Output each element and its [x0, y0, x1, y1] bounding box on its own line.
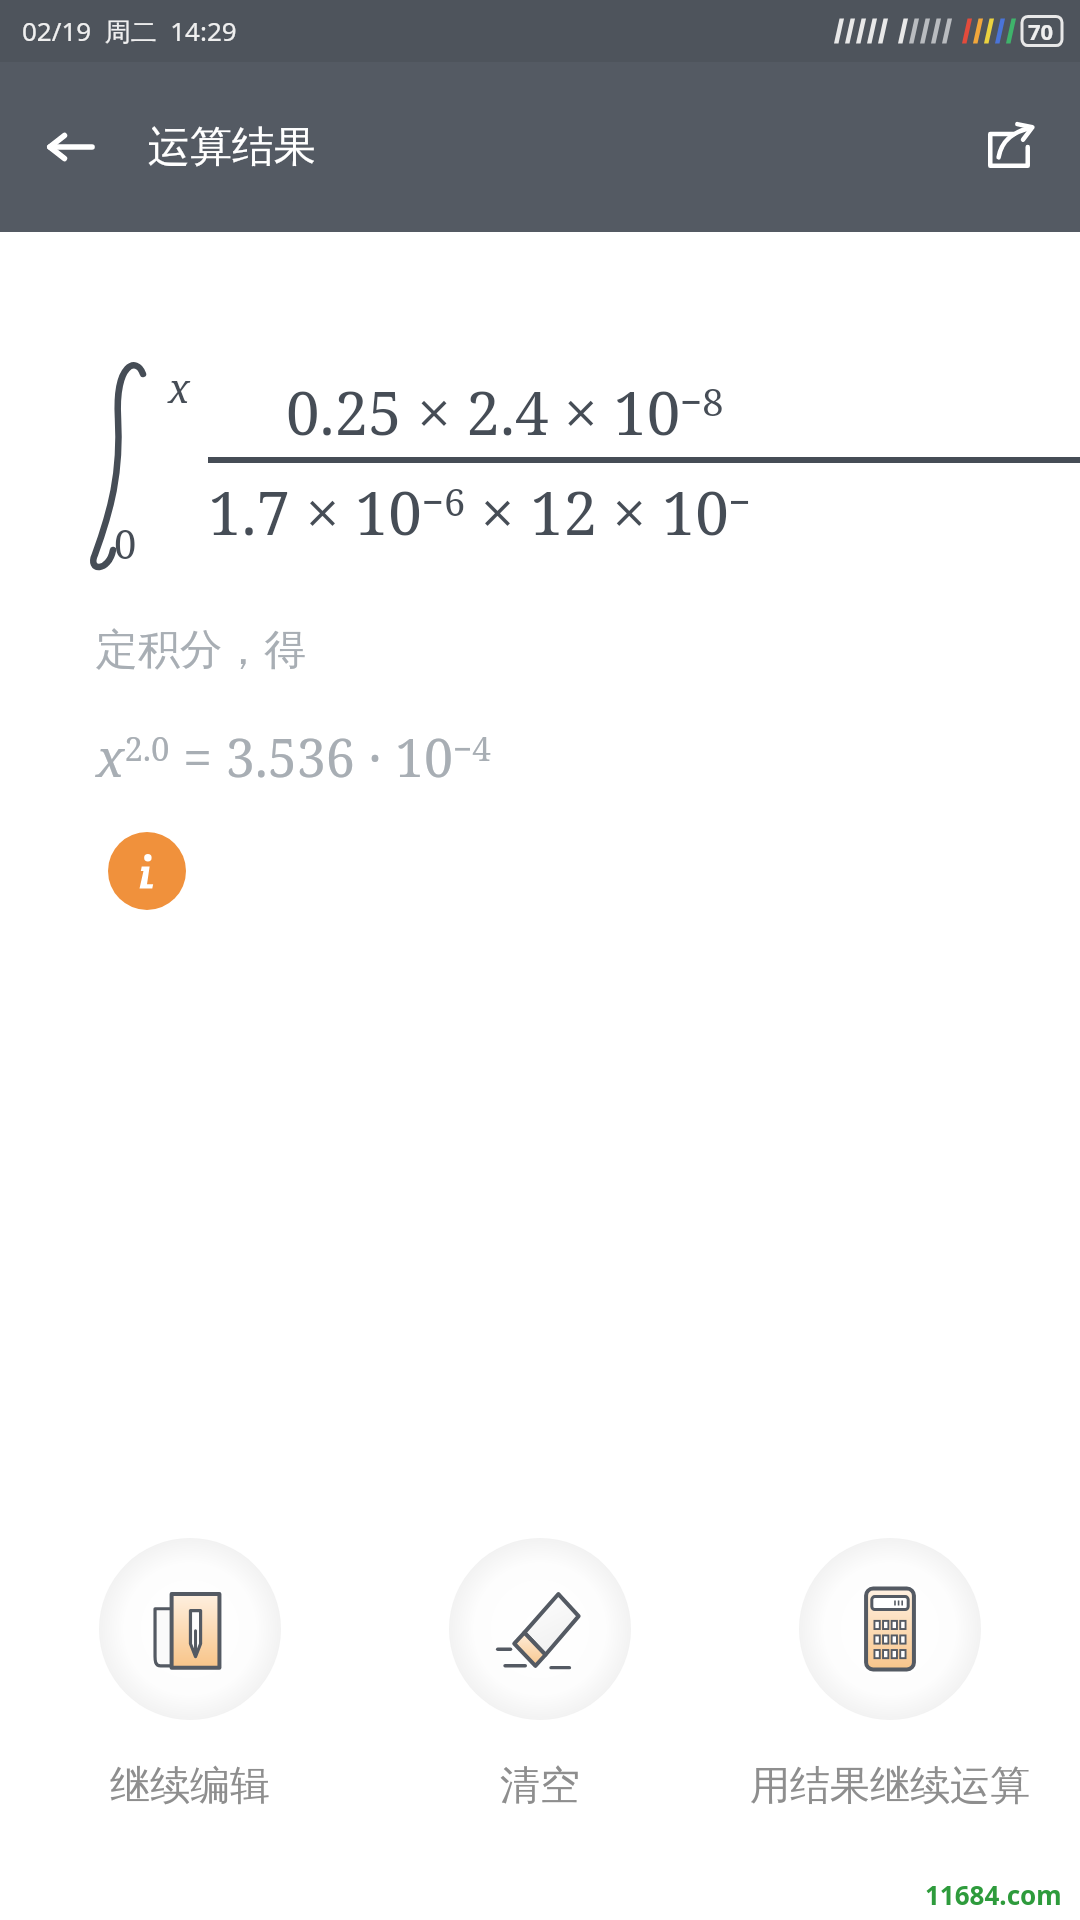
- button[interactable]: Share: [966, 104, 1052, 190]
- staticText: 0: [114, 516, 137, 570]
- button[interactable]: 清空: [396, 1538, 684, 1810]
- staticText: 定积分，得: [96, 624, 306, 677]
- button[interactable]: Info: [108, 832, 186, 910]
- staticText: 运算结果: [148, 121, 316, 174]
- staticText: 1.7 × 10−6 × 12 × 10−: [208, 471, 751, 553]
- staticText: 0.25 × 2.4 × 10−8: [286, 371, 724, 453]
- staticText: 02/19 周二 14:29: [22, 13, 237, 49]
- staticText: 继续编辑: [110, 1760, 270, 1810]
- staticText: 11684.com: [925, 1877, 1062, 1912]
- staticText: x: [168, 360, 190, 414]
- button[interactable]: 继续编辑: [46, 1538, 334, 1810]
- staticText: 用结果继续运算: [750, 1760, 1030, 1810]
- button[interactable]: Back: [28, 105, 112, 189]
- staticText: x2.0 = 3.536 · 10−4: [96, 721, 491, 792]
- button[interactable]: 用结果继续运算: [746, 1538, 1034, 1810]
- staticText: 70: [1028, 16, 1054, 46]
- staticText: 清空: [500, 1760, 580, 1810]
